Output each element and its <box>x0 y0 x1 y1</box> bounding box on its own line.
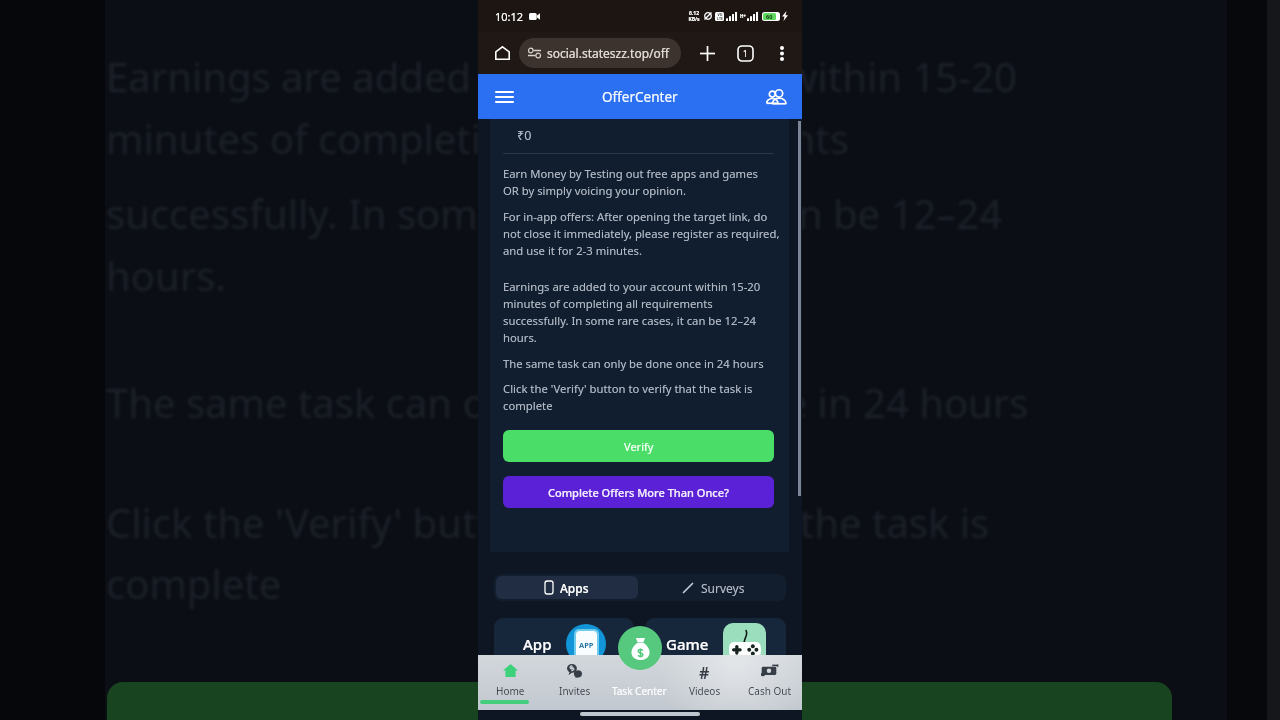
button[interactable]: People <box>762 83 790 111</box>
button[interactable]: Task Center <box>618 626 662 670</box>
staticText: Apps <box>560 580 589 596</box>
staticText: 60 <box>766 13 773 20</box>
staticText: APP <box>579 640 594 650</box>
staticText: Complete Offers More Than Once? <box>548 485 729 500</box>
button[interactable]: Invites <box>542 655 607 710</box>
button[interactable]: Surveys <box>640 574 786 601</box>
staticText: 10:12 <box>495 9 524 24</box>
staticText: VO LTE <box>717 12 723 21</box>
staticText: Earnings are added to your account withi… <box>106 49 1017 103</box>
staticText: Task Center <box>612 684 667 698</box>
button[interactable]: Complete Offers More Than Once? <box>503 476 774 508</box>
staticText: Videos <box>689 684 721 698</box>
button[interactable]: Game <box>645 618 786 670</box>
button[interactable]: Menu <box>490 83 518 111</box>
staticText: For in-app offers: After opening the tar… <box>503 209 780 259</box>
staticText: Invites <box>559 684 591 698</box>
staticText: The same task can only be done once in 2… <box>106 375 1029 429</box>
staticText: hours. <box>106 248 227 302</box>
button[interactable]: More options <box>770 41 794 65</box>
button[interactable]: social.stateszz.top/off <box>519 38 681 68</box>
staticText: ₹0 <box>517 127 532 144</box>
staticText: H+ <box>740 13 747 19</box>
staticText: Earn Money by Testing out free apps and … <box>503 166 758 199</box>
button[interactable]: Task Center <box>607 655 672 710</box>
button[interactable]: # <box>672 655 737 710</box>
staticText: The same task can only be done once in 2… <box>503 356 764 371</box>
staticText: Game <box>666 634 709 654</box>
staticText: complete <box>106 556 282 610</box>
staticText: Cash Out <box>748 684 792 698</box>
staticText: OfferCenter <box>602 88 678 106</box>
button[interactable]: App <box>494 618 634 670</box>
button[interactable]: Apps <box>496 576 638 599</box>
staticText: Home <box>496 684 525 698</box>
staticText: Click the 'Verify' button to verify that… <box>106 495 990 549</box>
button[interactable]: Tabs <box>732 40 758 66</box>
staticText: Click the 'Verify' button to verify that… <box>503 381 753 414</box>
staticText: App <box>523 634 552 654</box>
button[interactable]: Cash Out <box>737 655 802 710</box>
staticText: 6.12 KB/s <box>688 10 700 23</box>
staticText: social.stateszz.top/off <box>547 45 670 61</box>
staticText: successfully. In some rare cases, it can… <box>106 186 1003 240</box>
button[interactable]: Home <box>489 40 515 66</box>
button[interactable]: Verify <box>503 430 774 462</box>
staticText: Surveys <box>701 580 745 596</box>
staticText: Earnings are added to your account withi… <box>503 279 761 346</box>
staticText: Verify <box>624 439 654 454</box>
staticText: # <box>699 662 710 679</box>
button[interactable]: Home <box>478 655 542 710</box>
button[interactable]: New tab <box>694 40 720 66</box>
staticText: minutes of completing all requirements <box>106 111 849 165</box>
staticText: 1 <box>743 48 748 59</box>
